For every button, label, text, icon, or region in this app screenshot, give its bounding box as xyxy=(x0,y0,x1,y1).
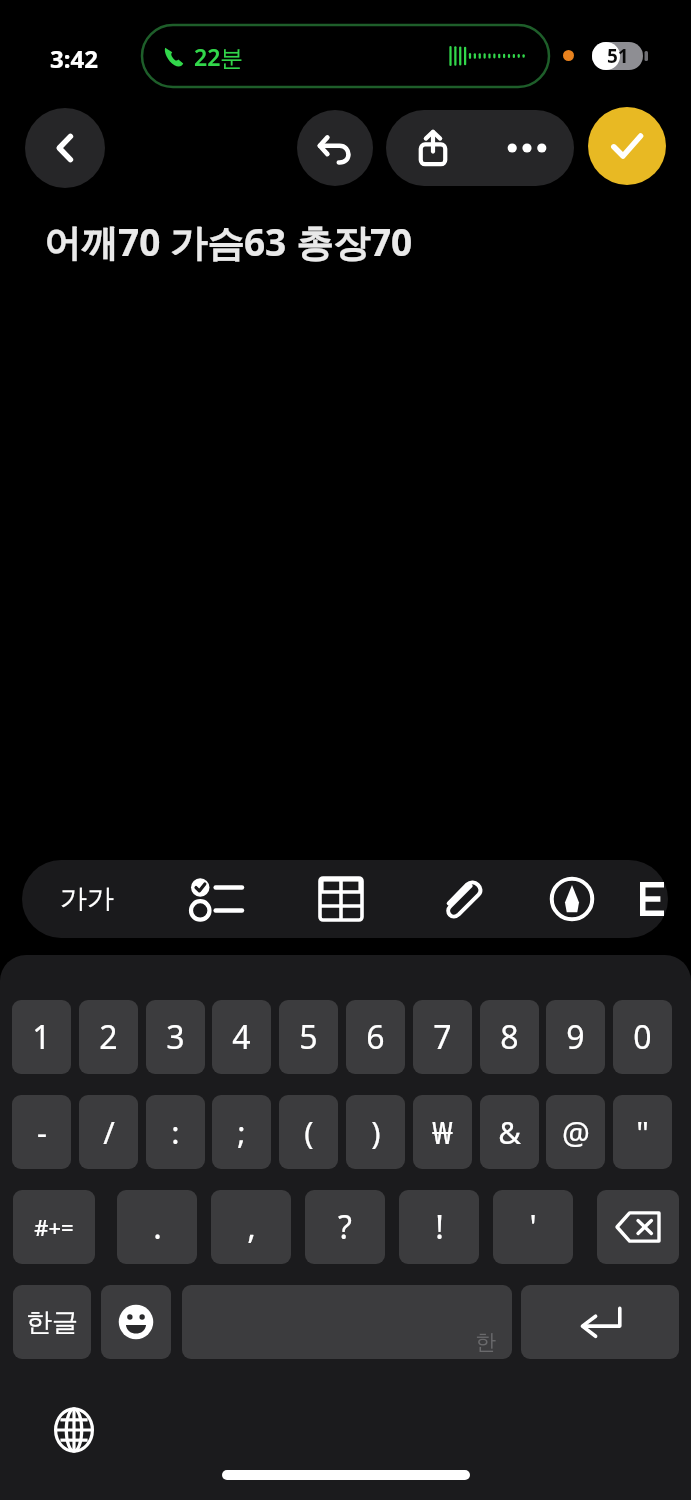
staticText: 8 xyxy=(500,1015,519,1059)
button[interactable]: 3 xyxy=(146,1000,205,1074)
button[interactable]: : xyxy=(146,1095,205,1169)
button[interactable]: 1 xyxy=(12,1000,71,1074)
button[interactable]: 6 xyxy=(346,1000,405,1074)
button[interactable]: . xyxy=(117,1190,197,1264)
staticText: 어깨70 가슴63 총장70 xyxy=(44,216,413,267)
staticText: 2 xyxy=(99,1015,118,1059)
staticText: 한 xyxy=(475,1329,496,1355)
button[interactable]: @ xyxy=(546,1095,605,1169)
button[interactable]: Ongoing call 22 minutes xyxy=(141,24,550,88)
button[interactable]: ; xyxy=(212,1095,271,1169)
staticText: 4 xyxy=(232,1015,251,1059)
staticText: " xyxy=(636,1111,649,1153)
staticText: 3 xyxy=(166,1015,185,1059)
button[interactable]: 7 xyxy=(413,1000,472,1074)
staticText: ! xyxy=(435,1205,444,1249)
staticText: , xyxy=(247,1205,256,1249)
button[interactable]: More tools xyxy=(640,860,668,938)
button[interactable]: , xyxy=(211,1190,291,1264)
button[interactable]: ( xyxy=(279,1095,338,1169)
staticText: 0 xyxy=(633,1015,652,1059)
button[interactable]: ? xyxy=(305,1190,385,1264)
button[interactable]: Emoji xyxy=(101,1285,171,1359)
button[interactable]: Done xyxy=(588,107,666,185)
button[interactable]: ! xyxy=(399,1190,479,1264)
staticText: & xyxy=(498,1111,521,1153)
button[interactable]: ) xyxy=(346,1095,405,1169)
staticText: 9 xyxy=(566,1015,585,1059)
staticText: / xyxy=(103,1111,115,1153)
button[interactable]: 한글 xyxy=(13,1285,91,1359)
staticText: ( xyxy=(304,1111,314,1153)
button[interactable]: #+= xyxy=(13,1190,95,1264)
staticText: ' xyxy=(529,1205,537,1249)
button[interactable]: Checklist xyxy=(162,860,270,938)
staticText: 6 xyxy=(366,1015,385,1059)
button[interactable]: ' xyxy=(493,1190,573,1264)
button[interactable]: Return xyxy=(521,1285,679,1359)
staticText: 3:42 xyxy=(50,42,98,75)
staticText: 22분 xyxy=(194,41,244,72)
staticText: - xyxy=(37,1111,47,1153)
button[interactable]: ₩ xyxy=(413,1095,472,1169)
button[interactable]: Markup xyxy=(522,860,622,938)
button[interactable]: 가가 xyxy=(32,860,142,938)
button[interactable]: 2 xyxy=(79,1000,138,1074)
staticText: : xyxy=(171,1111,180,1153)
staticText: 5 xyxy=(299,1015,318,1059)
button[interactable]: " xyxy=(613,1095,672,1169)
staticText: 7 xyxy=(433,1015,452,1059)
button[interactable]: 5 xyxy=(279,1000,338,1074)
staticText: ; xyxy=(237,1111,246,1153)
staticText: ? xyxy=(338,1205,352,1249)
staticText: #+= xyxy=(34,1212,74,1242)
staticText: 1 xyxy=(32,1015,51,1059)
staticText: 가가 xyxy=(60,882,114,916)
button[interactable]: Table xyxy=(288,860,394,938)
button[interactable]: - xyxy=(12,1095,71,1169)
button[interactable]: Share xyxy=(386,110,480,186)
button[interactable]: 8 xyxy=(480,1000,539,1074)
staticText: @ xyxy=(562,1111,590,1153)
button[interactable]: & xyxy=(480,1095,539,1169)
button[interactable]: Back xyxy=(25,108,105,188)
staticText: 한글 xyxy=(26,1306,78,1339)
staticText: ) xyxy=(371,1111,381,1153)
button[interactable]: 4 xyxy=(212,1000,271,1074)
button[interactable]: Undo xyxy=(297,110,373,186)
staticText: ₩ xyxy=(432,1111,453,1153)
button[interactable]: Switch keyboard language xyxy=(44,1400,104,1460)
button[interactable]: Attach xyxy=(408,860,514,938)
button[interactable]: 0 xyxy=(613,1000,672,1074)
button[interactable]: / xyxy=(79,1095,138,1169)
staticText: 51 xyxy=(607,43,629,69)
staticText: . xyxy=(153,1205,162,1249)
button[interactable]: Backspace xyxy=(597,1190,679,1264)
button[interactable]: Space xyxy=(182,1285,512,1359)
button[interactable]: More options xyxy=(480,110,574,186)
button[interactable]: 9 xyxy=(546,1000,605,1074)
